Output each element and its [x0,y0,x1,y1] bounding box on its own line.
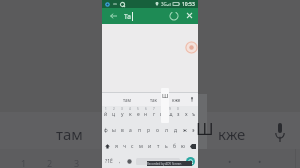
staticText: Ш [162,92,169,100]
staticText: 10:53 [182,1,195,8]
staticText: з [177,111,180,118]
staticText: ц [112,111,116,118]
staticText: я [115,143,118,150]
staticText: в [121,127,124,134]
staticText: х [185,111,188,118]
other: Voice input [275,123,285,142]
staticText: • [258,155,262,167]
staticText: н [144,111,148,118]
staticText: 2 [47,157,53,168]
other: Shift [105,144,110,149]
staticText: ?1Ё [105,158,113,165]
staticText: 3G [161,1,167,7]
staticText: 0 [177,107,179,111]
staticText: а [129,127,132,134]
staticText: м [139,143,143,150]
button[interactable]: Refresh [166,8,182,24]
staticText: 9 [169,107,171,111]
other: Backspace [190,144,196,149]
staticText: ы [112,127,116,134]
staticText: й [104,111,108,118]
staticText: Recorded by ADV Screen Recorder [147,162,192,166]
staticText: 1 [105,107,107,111]
staticText: ю [181,143,185,150]
staticText: ш [160,111,165,118]
button[interactable]: Back [105,8,121,24]
staticText: е [137,111,140,118]
button[interactable]: Та [124,8,132,24]
button[interactable] [136,158,180,165]
staticText: л [165,127,168,134]
staticText: 5 [137,107,139,111]
staticText: ж [183,127,187,134]
staticText: кже [218,124,246,144]
staticText: о [156,127,159,134]
staticText: щ [168,111,173,118]
staticText: б [173,143,176,150]
staticText: 6 [145,107,147,111]
staticText: у [121,111,124,118]
staticText: Ш [196,117,214,140]
staticText: кже [172,97,181,103]
staticText: там [56,124,83,144]
staticText: ъ [192,111,196,118]
staticText: т [157,143,160,150]
staticText: ф [104,127,108,134]
other: Emoji [127,159,132,164]
staticText: 4 [129,107,131,111]
staticText: так [150,97,157,103]
staticText: там [123,97,132,103]
staticText: д [174,127,178,134]
staticText: и [148,143,152,150]
staticText: Та [124,12,131,21]
staticText: р [147,127,151,134]
staticText: 1 [21,157,27,168]
staticText: 3 [74,157,80,168]
staticText: г [153,111,156,118]
staticText: 3 [121,107,123,111]
staticText: , [119,158,121,165]
button[interactable]: Search [186,157,195,166]
staticText: 2 [113,107,115,111]
staticText: к [129,111,132,118]
staticText: э [192,127,195,134]
staticText: с [131,143,134,150]
button[interactable]: Close [182,8,196,22]
staticText: ч [123,143,126,150]
staticText: • [228,155,232,167]
staticText: 7 [153,107,155,111]
staticText: ь [165,143,168,150]
staticText: п [138,127,142,134]
other: Voice input [190,97,194,102]
